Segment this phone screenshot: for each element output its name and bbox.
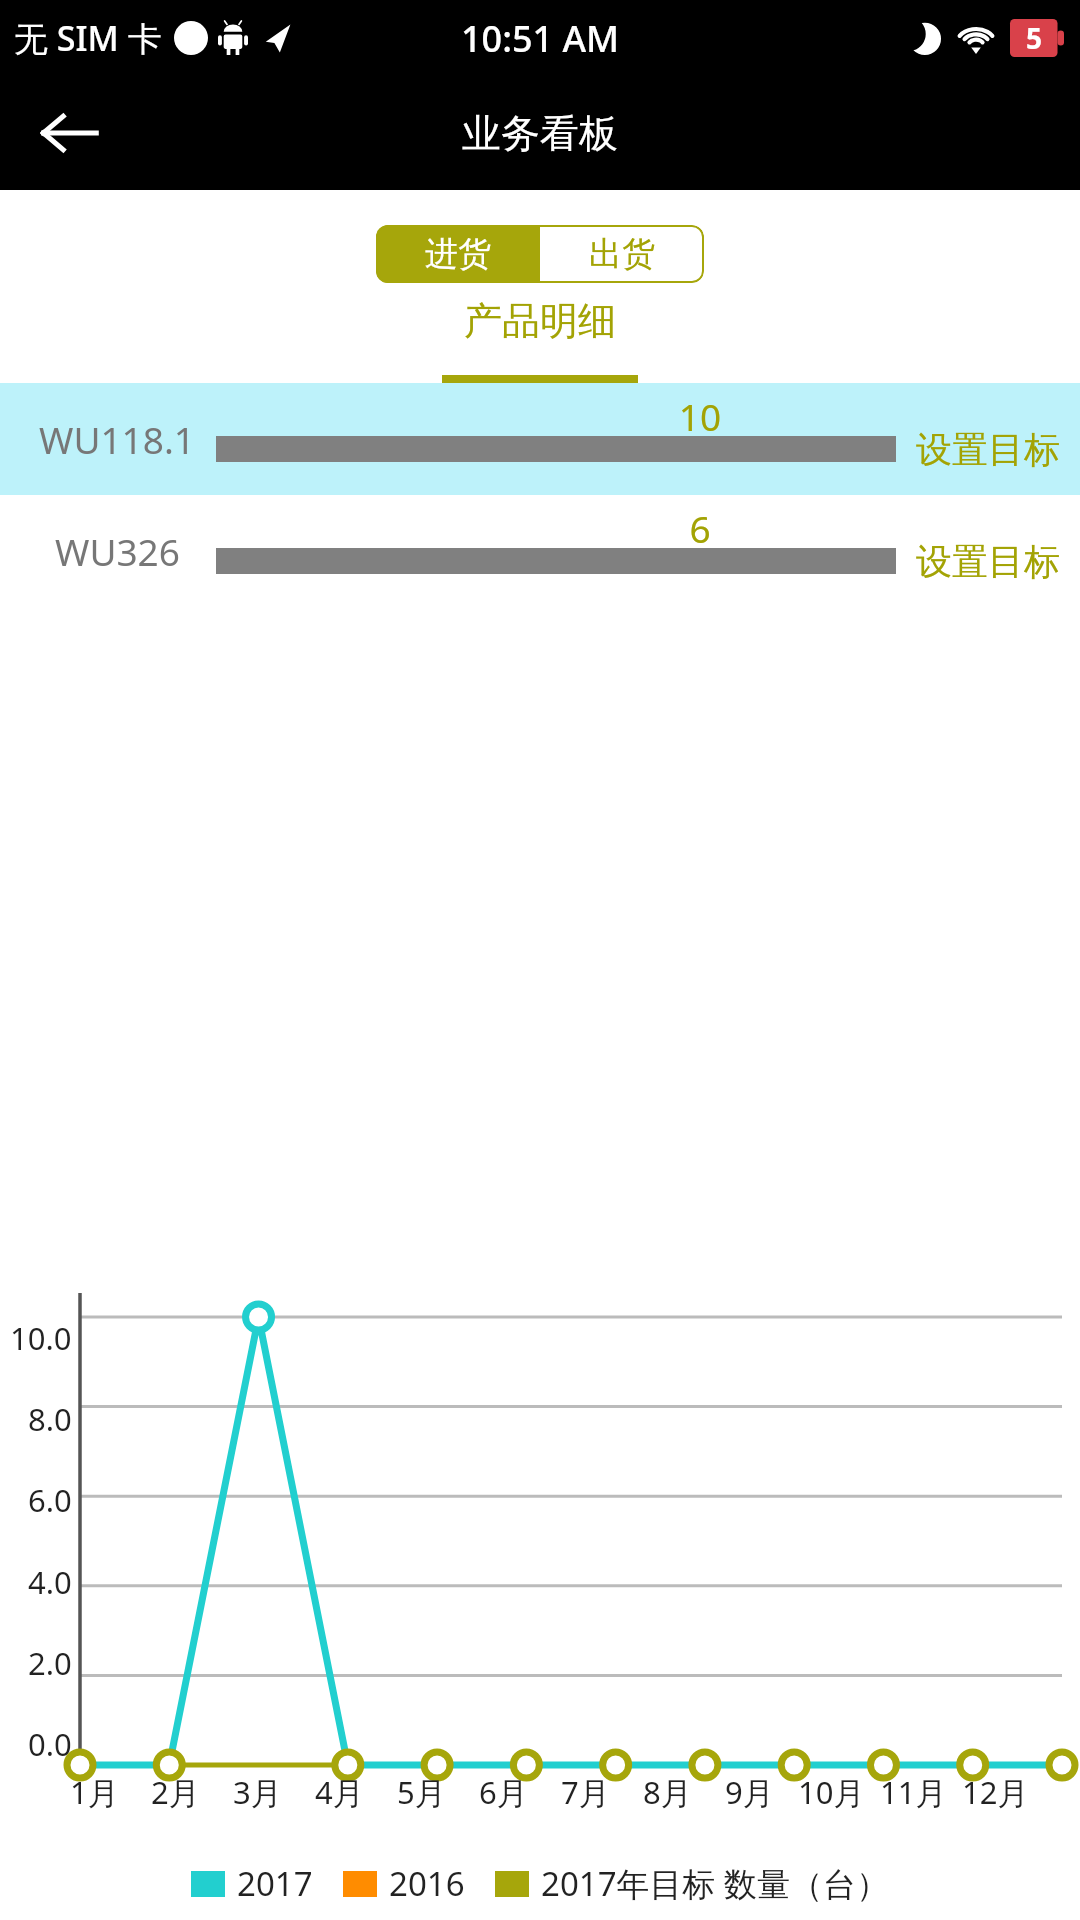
- staticText: 10.0: [10, 1317, 72, 1359]
- staticText: 产品明细: [464, 297, 616, 345]
- button[interactable]: 返回: [26, 90, 112, 176]
- button[interactable]: 2017年目标 数量（台）: [495, 1861, 890, 1906]
- button[interactable]: 2016: [343, 1861, 465, 1906]
- staticText: 5月: [397, 1771, 446, 1813]
- staticText: 进货: [425, 233, 491, 275]
- button[interactable]: 2017: [191, 1861, 313, 1906]
- staticText: 6月: [479, 1771, 528, 1813]
- staticText: 10:51 AM: [461, 14, 620, 63]
- staticText: 业务看板: [462, 109, 618, 158]
- button[interactable]: 出货: [540, 225, 704, 283]
- staticText: 2016: [389, 1861, 465, 1906]
- button[interactable]: 设置目标: [916, 539, 1060, 584]
- staticText: 设置目标: [916, 427, 1060, 472]
- staticText: 2月: [151, 1771, 200, 1813]
- button[interactable]: 设置目标: [916, 427, 1060, 472]
- staticText: 9月: [725, 1771, 774, 1813]
- staticText: 8.0: [28, 1398, 72, 1440]
- staticText: 10: [640, 391, 760, 441]
- staticText: 1月: [70, 1771, 119, 1813]
- staticText: 4月: [315, 1771, 364, 1813]
- staticText: WU118.1: [39, 414, 196, 464]
- staticText: 无 SIM 卡: [14, 15, 162, 61]
- button[interactable]: 产品明细: [434, 297, 646, 383]
- staticText: 10月: [798, 1771, 865, 1813]
- button[interactable]: 进货: [376, 225, 540, 283]
- staticText: 11月: [880, 1771, 947, 1813]
- staticText: 6.0: [28, 1479, 72, 1521]
- staticText: 7月: [561, 1771, 610, 1813]
- staticText: 出货: [589, 233, 655, 275]
- staticText: 2017年目标 数量（台）: [541, 1861, 890, 1906]
- staticText: 4.0: [28, 1561, 72, 1603]
- staticText: 2017: [237, 1861, 313, 1906]
- staticText: 3月: [233, 1771, 282, 1813]
- staticText: 12月: [962, 1771, 1029, 1813]
- button[interactable]: 6: [0, 495, 1080, 607]
- staticText: WU326: [55, 526, 180, 576]
- staticText: 2.0: [28, 1642, 72, 1684]
- staticText: 8月: [643, 1771, 692, 1813]
- button[interactable]: 10: [0, 383, 1080, 495]
- staticText: 0.0: [28, 1723, 72, 1765]
- staticText: 5: [1026, 19, 1043, 57]
- staticText: 6: [640, 503, 760, 553]
- staticText: 设置目标: [916, 539, 1060, 584]
